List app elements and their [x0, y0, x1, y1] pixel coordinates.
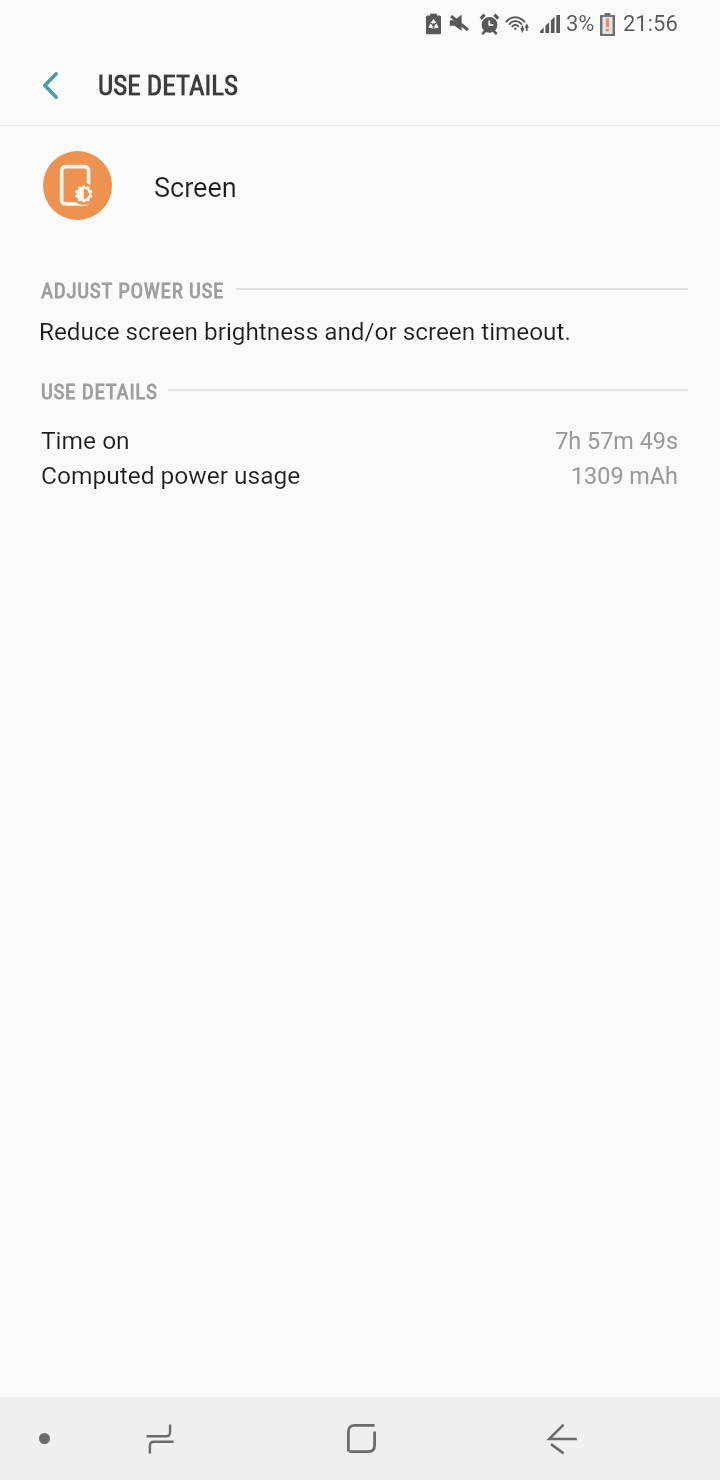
- staticText: Reduce screen brightness and/or screen t…: [39, 317, 571, 345]
- button[interactable]: Show keyboard: [18, 1397, 70, 1480]
- staticText: 3%: [566, 11, 595, 37]
- button[interactable]: Computed power usage: [0, 461, 720, 496]
- staticText: Time on: [41, 426, 130, 455]
- button[interactable]: Time on: [0, 426, 720, 461]
- button[interactable]: Recent apps: [120, 1397, 200, 1480]
- staticText: 21:56: [623, 11, 678, 37]
- staticText: USE DETAILS: [98, 70, 239, 102]
- staticText: 1309 mAh: [0, 462, 678, 489]
- staticText: 7h 57m 49s: [0, 427, 678, 454]
- staticText: Screen: [154, 172, 237, 204]
- button[interactable]: Back: [523, 1397, 603, 1480]
- staticText: USE DETAILS: [41, 380, 158, 405]
- staticText: ADJUST POWER USE: [41, 279, 225, 304]
- button[interactable]: Navigate up: [25, 60, 75, 110]
- button[interactable]: Home: [321, 1397, 401, 1480]
- staticText: Computed power usage: [41, 461, 301, 490]
